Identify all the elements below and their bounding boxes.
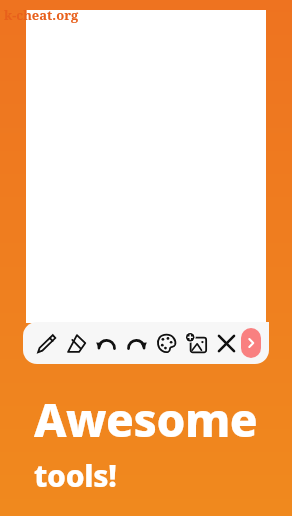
- button[interactable]: Redo: [121, 328, 151, 358]
- button[interactable]: Undo: [91, 328, 121, 358]
- button[interactable]: [26, 10, 266, 323]
- button[interactable]: Color palette: [151, 328, 181, 358]
- staticText: Awesome: [34, 388, 258, 451]
- button[interactable]: Close: [211, 328, 241, 358]
- staticText: k-cheat.org: [4, 6, 79, 24]
- staticText: tools!: [34, 455, 117, 496]
- button[interactable]: Next: [241, 328, 261, 358]
- button[interactable]: Eraser: [61, 328, 91, 358]
- button[interactable]: Add image: [181, 328, 211, 358]
- button[interactable]: Pen: [31, 328, 61, 358]
